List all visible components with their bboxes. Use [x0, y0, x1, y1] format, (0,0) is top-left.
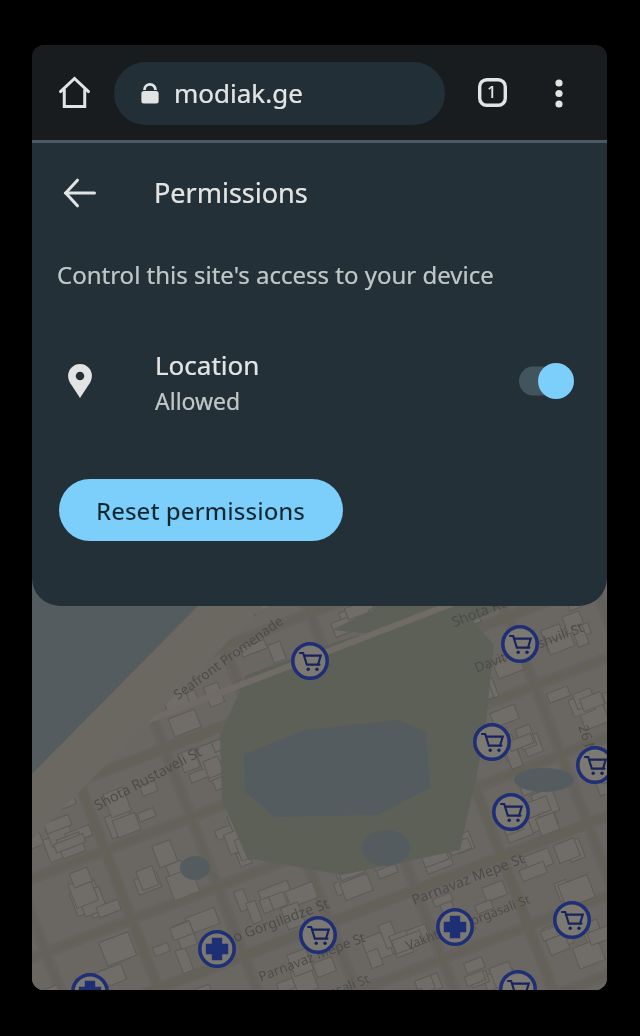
staticText: Location: [155, 347, 260, 382]
button[interactable]: Back: [48, 161, 112, 225]
button[interactable]: modiak.ge: [114, 62, 445, 125]
button[interactable]: Location: [32, 336, 607, 426]
button[interactable]: Tabs: [461, 61, 523, 123]
staticText: modiak.ge: [174, 75, 303, 110]
staticText: Control this site's access to your devic…: [57, 258, 494, 291]
staticText: 1: [487, 80, 497, 103]
button[interactable]: Location permission toggle: [519, 363, 574, 399]
staticText: Reset permissions: [96, 494, 306, 527]
staticText: Permissions: [154, 174, 308, 211]
button[interactable]: More options: [528, 61, 590, 123]
button[interactable]: Home: [43, 61, 105, 123]
button[interactable]: Reset permissions: [59, 479, 343, 541]
staticText: Allowed: [155, 385, 241, 416]
